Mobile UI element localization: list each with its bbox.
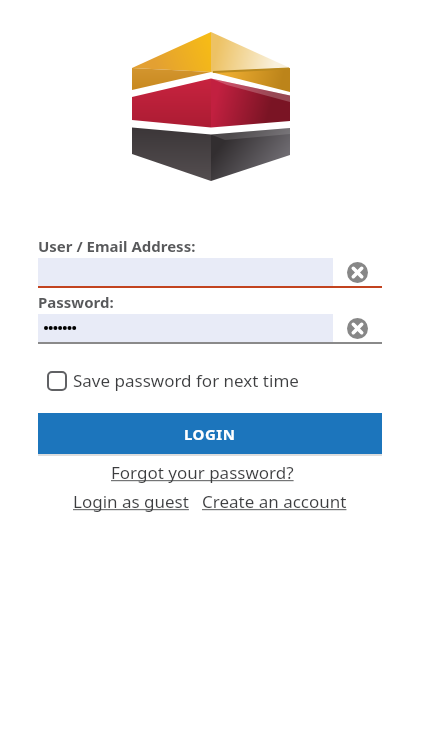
- button[interactable]: Create an account: [202, 490, 347, 513]
- button[interactable]: LOGIN: [38, 413, 382, 454]
- staticText: Password:: [38, 292, 114, 312]
- button[interactable]: Login as guest: [73, 490, 189, 513]
- button[interactable]: [347, 262, 368, 283]
- staticText: LOGIN: [184, 424, 236, 444]
- staticText: Login as guest: [73, 490, 189, 513]
- staticText: Create an account: [202, 490, 347, 513]
- button[interactable]: [347, 318, 368, 339]
- staticText: Forgot your password?: [111, 461, 294, 484]
- button[interactable]: Save password for next time: [48, 369, 299, 392]
- button[interactable]: [38, 314, 333, 342]
- button[interactable]: Forgot your password?: [111, 461, 294, 484]
- staticText: Save password for next time: [73, 369, 299, 392]
- staticText: User / Email Address:: [38, 236, 196, 256]
